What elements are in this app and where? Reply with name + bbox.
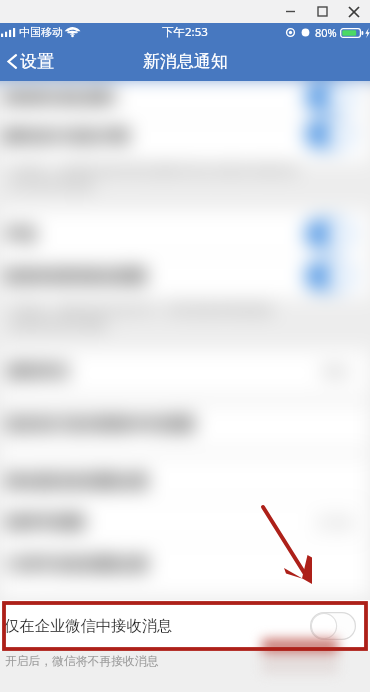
staticText: 中国移动: [19, 25, 63, 39]
button[interactable]: 仅在企业微信中接收消息: [0, 600, 370, 651]
button[interactable]: Close: [338, 0, 370, 23]
staticText: 下午2:53: [162, 24, 208, 40]
button[interactable]: Maximize: [306, 0, 338, 23]
staticText: 开启后，微信将不再接收消息: [5, 654, 159, 669]
button[interactable]: Minimize: [274, 0, 306, 23]
button[interactable]: 设置: [0, 45, 66, 78]
staticText: 新消息通知: [143, 51, 228, 72]
staticText: 设置: [20, 51, 54, 72]
staticText: 80%: [315, 25, 337, 40]
staticText: 仅在企业微信中接收消息: [4, 616, 173, 635]
